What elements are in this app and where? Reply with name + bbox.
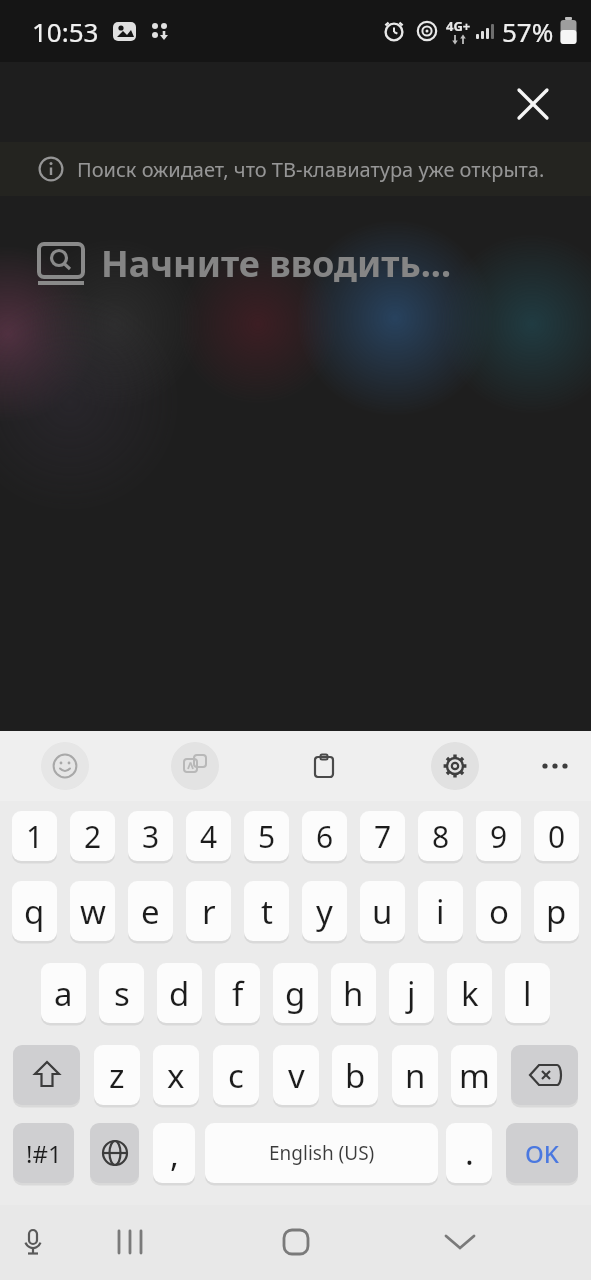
staticText: 10:53 xyxy=(32,14,99,49)
button[interactable]: d xyxy=(157,963,202,1023)
staticText: English (US) xyxy=(269,1140,375,1166)
staticText: s xyxy=(114,971,130,1016)
button[interactable]: h xyxy=(331,963,376,1023)
staticText: p xyxy=(546,889,567,934)
button[interactable]: u xyxy=(360,881,405,941)
staticText: x xyxy=(167,1053,185,1098)
staticText: 7 xyxy=(374,816,392,857)
staticText: 57% xyxy=(502,14,554,49)
button[interactable] xyxy=(106,1218,154,1266)
button[interactable]: p xyxy=(534,881,579,941)
button[interactable] xyxy=(90,1123,139,1183)
staticText: r xyxy=(202,889,216,934)
button[interactable] xyxy=(436,1218,484,1266)
staticText: m xyxy=(459,1053,490,1098)
staticText: f xyxy=(232,971,244,1016)
button[interactable]: s xyxy=(99,963,144,1023)
button[interactable]: Начните вводить... xyxy=(38,232,591,294)
staticText: h xyxy=(343,971,364,1016)
button[interactable]: t xyxy=(244,881,289,941)
button[interactable]: l xyxy=(505,963,550,1023)
staticText: b xyxy=(345,1053,366,1098)
button[interactable] xyxy=(300,742,348,790)
button[interactable]: n xyxy=(392,1045,438,1105)
staticText: i xyxy=(436,889,445,934)
button[interactable]: OK xyxy=(506,1123,578,1183)
staticText: 6 xyxy=(316,816,334,857)
staticText: OK xyxy=(525,1137,559,1170)
button[interactable]: r xyxy=(186,881,231,941)
staticText: 4 xyxy=(200,816,218,857)
staticText: g xyxy=(285,971,306,1016)
button[interactable]: c xyxy=(213,1045,259,1105)
staticText: a xyxy=(54,971,73,1016)
button[interactable]: f xyxy=(215,963,260,1023)
button[interactable]: English (US) xyxy=(205,1123,438,1183)
button[interactable]: x xyxy=(153,1045,199,1105)
staticText: l xyxy=(523,971,532,1016)
staticText: u xyxy=(372,889,393,934)
staticText: t xyxy=(261,889,273,934)
staticText: 2 xyxy=(84,816,102,857)
staticText: e xyxy=(141,889,160,934)
button[interactable]: 4 xyxy=(186,811,231,861)
button[interactable]: 1 xyxy=(12,811,57,861)
staticText: !#1 xyxy=(26,1137,62,1170)
staticText: 9 xyxy=(490,816,508,857)
button[interactable]: z xyxy=(94,1045,140,1105)
staticText: y xyxy=(316,889,333,934)
button[interactable] xyxy=(272,1218,320,1266)
staticText: k xyxy=(461,971,479,1016)
button[interactable]: 8 xyxy=(418,811,463,861)
staticText: v xyxy=(288,1053,305,1098)
button[interactable]: 5 xyxy=(244,811,289,861)
staticText: 4G+ xyxy=(446,17,471,35)
button[interactable] xyxy=(13,1045,80,1105)
staticText: w xyxy=(80,889,106,934)
button[interactable]: g xyxy=(273,963,318,1023)
button[interactable]: o xyxy=(476,881,521,941)
button[interactable] xyxy=(531,742,579,790)
button[interactable]: y xyxy=(302,881,347,941)
button[interactable]: v xyxy=(273,1045,319,1105)
button[interactable] xyxy=(511,1045,578,1105)
button[interactable] xyxy=(9,1218,57,1266)
button[interactable]: 3 xyxy=(128,811,173,861)
staticText: Начните вводить... xyxy=(101,239,452,288)
button[interactable]: a xyxy=(41,963,86,1023)
staticText: Поиск ожидает, что ТВ-клавиатура уже отк… xyxy=(77,156,545,183)
staticText: , xyxy=(170,1132,179,1177)
button[interactable]: , xyxy=(153,1123,195,1183)
button[interactable]: 0 xyxy=(534,811,579,861)
staticText: z xyxy=(109,1053,125,1098)
button[interactable]: b xyxy=(332,1045,378,1105)
button[interactable]: 9 xyxy=(476,811,521,861)
button[interactable]: e xyxy=(128,881,173,941)
staticText: q xyxy=(24,889,45,934)
button[interactable] xyxy=(509,80,557,128)
button[interactable] xyxy=(41,742,89,790)
button[interactable] xyxy=(171,742,219,790)
button[interactable]: w xyxy=(70,881,115,941)
button[interactable]: i xyxy=(418,881,463,941)
button[interactable]: k xyxy=(447,963,492,1023)
staticText: 1 xyxy=(26,816,44,857)
button[interactable]: 7 xyxy=(360,811,405,861)
staticText: d xyxy=(169,971,190,1016)
button[interactable]: 2 xyxy=(70,811,115,861)
staticText: 0 xyxy=(548,816,566,857)
button[interactable]: j xyxy=(389,963,434,1023)
staticText: o xyxy=(489,889,509,934)
button[interactable]: m xyxy=(451,1045,497,1105)
staticText: 3 xyxy=(142,816,160,857)
button[interactable] xyxy=(431,742,479,790)
button[interactable]: !#1 xyxy=(13,1123,74,1183)
staticText: n xyxy=(405,1053,426,1098)
staticText: c xyxy=(228,1053,244,1098)
staticText: 5 xyxy=(258,816,276,857)
staticText: 8 xyxy=(432,816,450,857)
button[interactable]: 6 xyxy=(302,811,347,861)
button[interactable]: . xyxy=(446,1123,492,1183)
button[interactable]: q xyxy=(12,881,57,941)
staticText: j xyxy=(407,971,416,1016)
